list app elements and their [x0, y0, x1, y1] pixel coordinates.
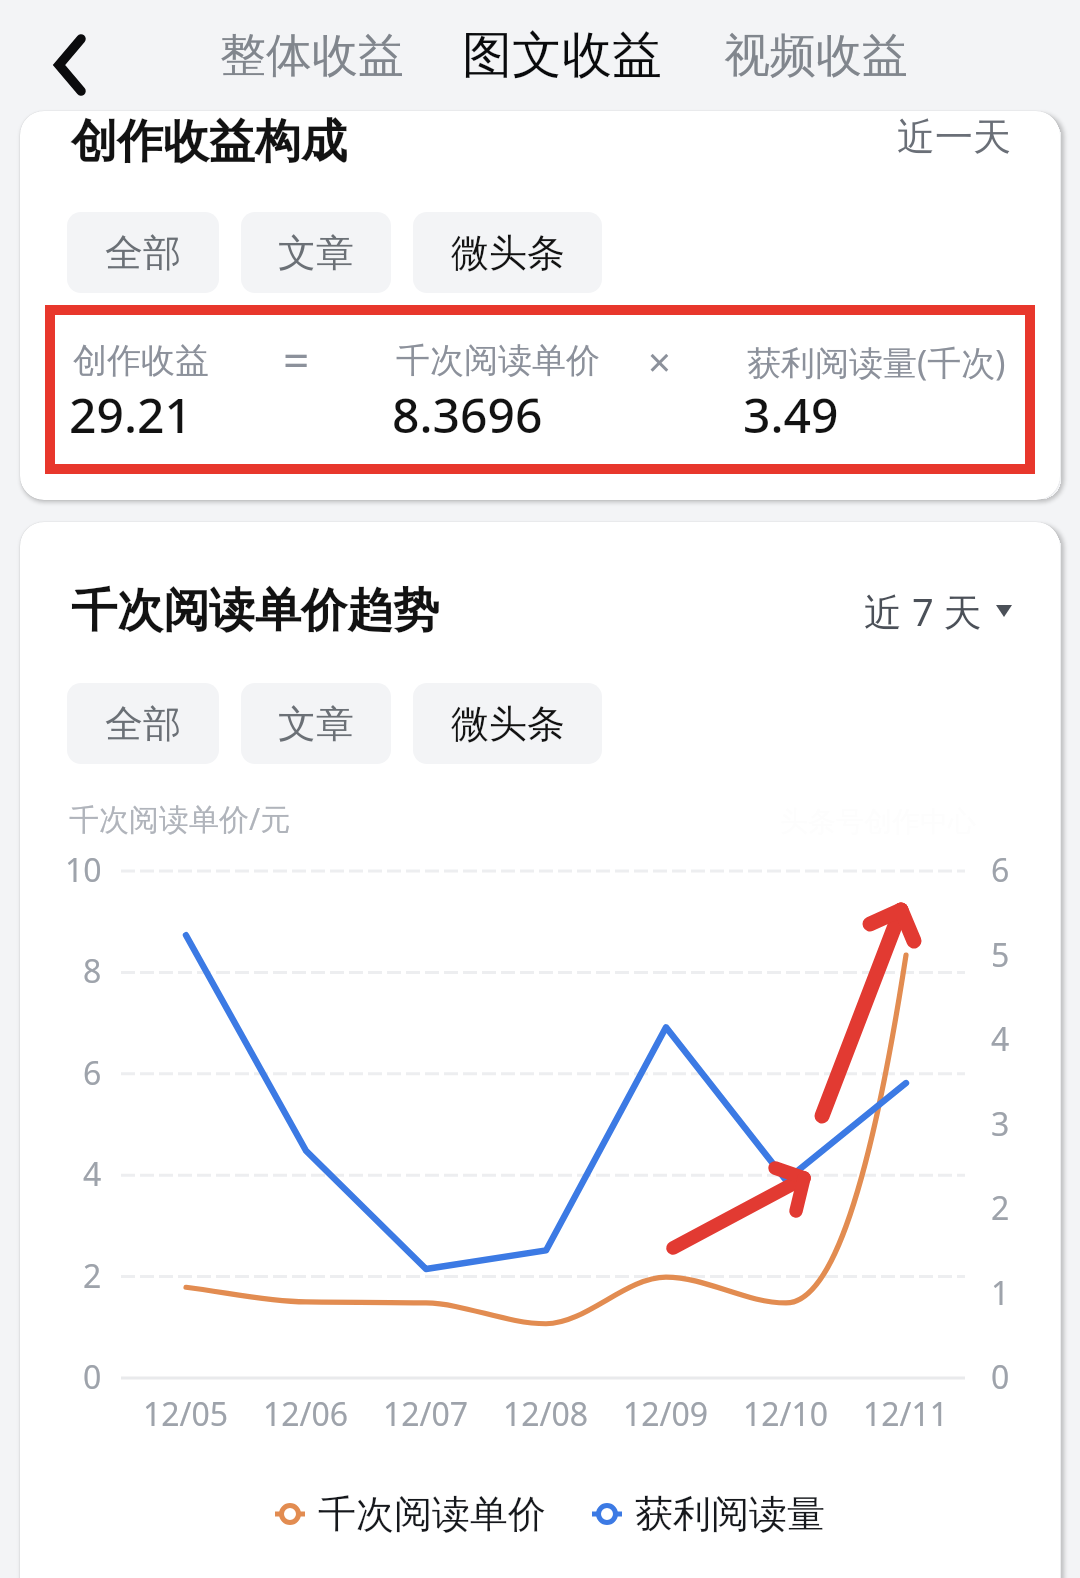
staticText: 12/09 [623, 1392, 709, 1436]
button[interactable]: Back [0, 0, 140, 111]
staticText: 视频收益 [724, 27, 908, 85]
button[interactable]: 文章 [241, 683, 391, 764]
staticText: 12/10 [743, 1392, 829, 1436]
staticText: 创作收益 [73, 339, 209, 382]
staticText: 10 [65, 848, 102, 892]
staticText: 千次阅读单价/元 [69, 798, 291, 839]
button[interactable]: 近一天 [897, 113, 1011, 161]
staticText: 全部 [105, 229, 181, 277]
button[interactable]: 获利阅读量 [592, 1488, 825, 1540]
staticText: 2 [991, 1186, 1010, 1230]
staticText: 2 [83, 1254, 102, 1298]
staticText: 12/08 [503, 1392, 589, 1436]
staticText: 千次阅读单价 [318, 1490, 546, 1538]
staticText: 微头条 [451, 700, 565, 748]
staticText: 8.3696 [392, 382, 543, 447]
button[interactable]: 图文收益 [434, 4, 690, 107]
staticText: 5 [991, 933, 1010, 977]
staticText: × [648, 334, 671, 388]
button[interactable]: 千次阅读单价 [275, 1488, 546, 1540]
staticText: 0 [991, 1355, 1010, 1399]
staticText: 千次阅读单价 [396, 339, 600, 382]
staticText: 0 [83, 1355, 102, 1399]
staticText: 近 7 天 [864, 585, 982, 637]
staticText: 4 [83, 1152, 102, 1196]
staticText: 近一天 [897, 113, 1011, 161]
staticText: 12/07 [383, 1392, 469, 1436]
staticText: 文章 [278, 229, 354, 277]
staticText: 全部 [105, 700, 181, 748]
staticText: 整体收益 [220, 27, 404, 85]
button[interactable]: 微头条 [413, 683, 602, 764]
staticText: 3.49 [743, 382, 839, 447]
staticText: 文章 [278, 700, 354, 748]
staticText: 1 [991, 1271, 1010, 1315]
staticText: 12/05 [143, 1392, 229, 1436]
staticText: 6 [991, 848, 1010, 892]
staticText: 6 [83, 1051, 102, 1095]
staticText: 获利阅读量(千次) [747, 339, 1006, 385]
staticText: = [283, 328, 310, 391]
button[interactable]: 文章 [241, 212, 391, 293]
staticText: 8 [83, 949, 102, 993]
button[interactable]: 微头条 [413, 212, 602, 293]
staticText: 微头条 [451, 229, 565, 277]
staticText: 12/06 [263, 1392, 349, 1436]
button[interactable]: 近 7 天 [864, 585, 1012, 637]
staticText: 3 [991, 1102, 1010, 1146]
staticText: 获利阅读量 [635, 1490, 825, 1538]
staticText: 图文收益 [462, 24, 662, 87]
button[interactable]: 全部 [67, 683, 219, 764]
staticText: 29.21 [69, 382, 192, 447]
button[interactable]: 视频收益 [696, 7, 936, 104]
button[interactable]: 全部 [67, 212, 219, 293]
staticText: 千次阅读单价趋势 [71, 582, 439, 640]
staticText: 12/11 [863, 1392, 949, 1436]
staticText: 4 [991, 1017, 1010, 1061]
button[interactable]: 整体收益 [192, 7, 432, 104]
staticText: 创作收益构成 [71, 113, 347, 171]
